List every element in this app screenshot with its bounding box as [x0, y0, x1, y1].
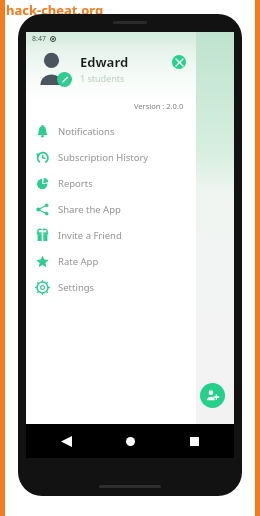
other: Edit profile: [57, 72, 72, 87]
button[interactable]: Back: [54, 429, 78, 453]
staticText: Rate App: [58, 255, 99, 268]
button[interactable]: Settings: [26, 274, 196, 300]
button[interactable]: Share the App: [26, 196, 196, 222]
staticText: Version : 2.0.0: [134, 101, 184, 111]
button[interactable]: Edit profile: [34, 49, 72, 87]
staticText: Settings: [58, 281, 95, 294]
button[interactable]: Recents: [182, 429, 206, 453]
staticText: Subscription History: [58, 151, 149, 164]
staticText: 8:47: [32, 34, 46, 44]
button[interactable]: Rate App: [26, 248, 196, 274]
staticText: 1 students: [80, 72, 125, 84]
button[interactable]: Subscription History: [26, 144, 196, 170]
button[interactable]: Invite a Friend: [26, 222, 196, 248]
staticText: hack-cheat.org: [6, 1, 104, 19]
button[interactable]: Notifications: [26, 118, 196, 144]
staticText: Invite a Friend: [58, 229, 122, 242]
staticText: Notifications: [58, 125, 115, 138]
button[interactable]: Add student: [200, 383, 225, 408]
button[interactable]: Close drawer: [172, 55, 186, 69]
button[interactable]: Reports: [26, 170, 196, 196]
staticText: Reports: [58, 177, 93, 190]
button[interactable]: Home: [118, 429, 142, 453]
staticText: Edward: [80, 53, 129, 71]
staticText: Share the App: [58, 203, 121, 216]
